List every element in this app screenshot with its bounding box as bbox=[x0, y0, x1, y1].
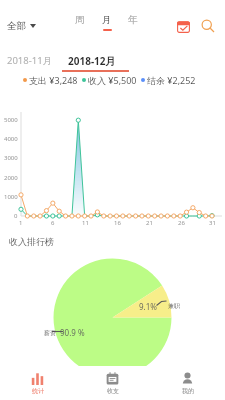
staticText: 11 bbox=[82, 219, 89, 227]
staticText: 26 bbox=[178, 219, 185, 227]
button[interactable]: Search bbox=[195, 13, 221, 39]
staticText: 薪资 bbox=[44, 329, 56, 337]
button[interactable]: 2018-12月 bbox=[62, 46, 129, 72]
button[interactable]: 周 bbox=[69, 14, 91, 36]
button[interactable]: 年 bbox=[122, 14, 144, 36]
staticText: 月 bbox=[102, 14, 112, 26]
staticText: 我的 bbox=[182, 387, 194, 395]
staticText: 2018-12月 bbox=[68, 54, 116, 68]
staticText: 6 bbox=[51, 219, 55, 227]
staticText: 0 bbox=[14, 212, 18, 220]
staticText: 年 bbox=[128, 14, 138, 26]
staticText: 9.1% bbox=[139, 301, 157, 312]
button[interactable]: 全部 bbox=[2, 16, 41, 36]
staticText: 90.9 % bbox=[60, 327, 85, 338]
button[interactable]: Calendar bbox=[170, 13, 196, 39]
staticText: 16 bbox=[114, 219, 121, 227]
staticText: 5000 bbox=[4, 116, 18, 124]
staticText: 全部 bbox=[7, 20, 26, 32]
button[interactable]: 2018-11月 bbox=[2, 46, 58, 72]
staticText: 1000 bbox=[4, 193, 18, 201]
staticText: 收入排行榜 bbox=[9, 236, 54, 247]
staticText: 4000 bbox=[4, 135, 18, 143]
staticText: 统计 bbox=[32, 387, 44, 395]
staticText: 2000 bbox=[4, 174, 18, 182]
staticText: 结余 ¥2,252 bbox=[147, 74, 196, 86]
staticText: 收支 bbox=[107, 387, 119, 395]
button[interactable]: 收支 bbox=[75, 366, 150, 400]
staticText: 1 bbox=[19, 219, 23, 227]
button[interactable]: 月 bbox=[96, 14, 118, 36]
staticText: 兼职 bbox=[168, 302, 180, 310]
staticText: 21 bbox=[146, 219, 153, 227]
staticText: 3000 bbox=[4, 154, 18, 162]
staticText: 收入 ¥5,500 bbox=[88, 74, 137, 86]
staticText: 31 bbox=[209, 219, 216, 227]
staticText: 周 bbox=[75, 14, 85, 26]
button[interactable]: 统计 bbox=[0, 366, 75, 400]
staticText: 支出 ¥3,248 bbox=[29, 74, 78, 86]
staticText: 2018-11月 bbox=[7, 54, 53, 67]
button[interactable]: 我的 bbox=[150, 366, 225, 400]
